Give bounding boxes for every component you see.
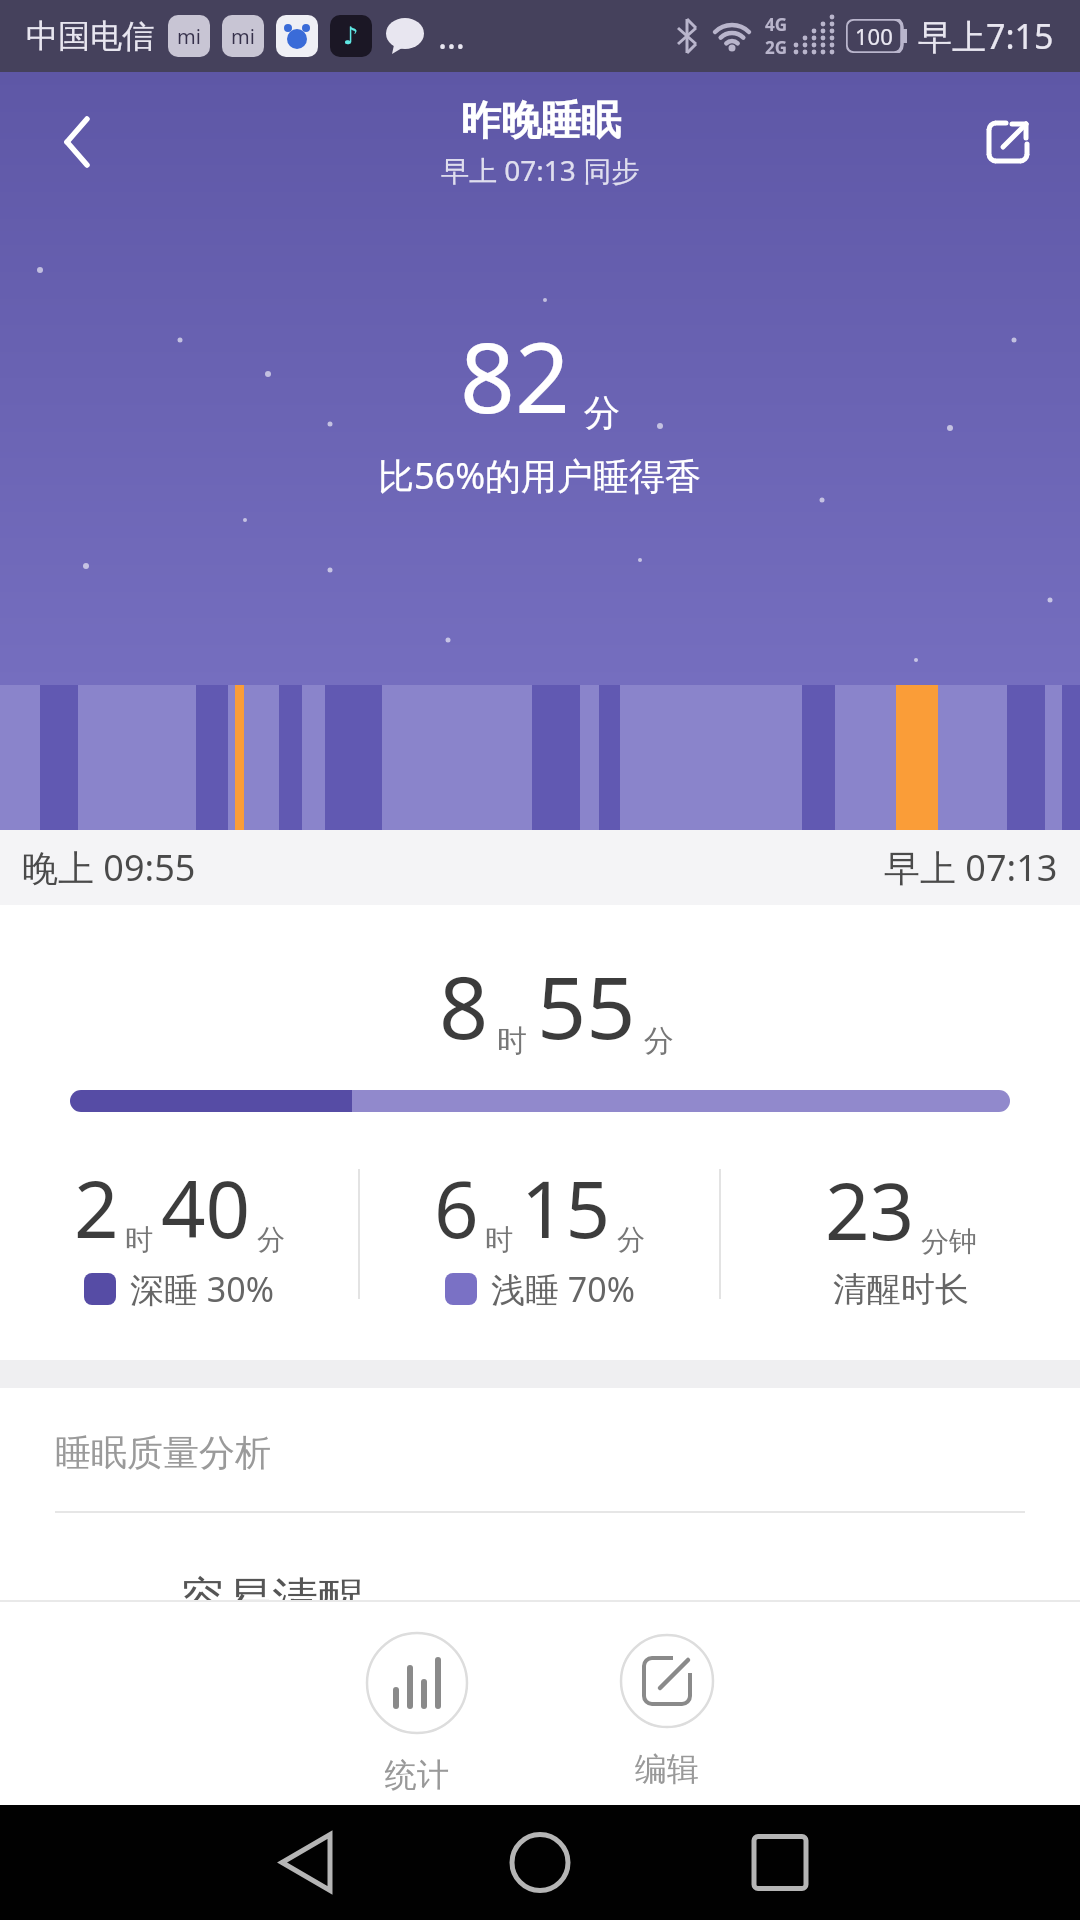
staticText: 2 bbox=[74, 1155, 119, 1261]
staticText: 15 bbox=[521, 1155, 611, 1261]
button[interactable]: 编辑 bbox=[619, 1633, 715, 1789]
staticText: 早上 07:13 同步 bbox=[441, 151, 640, 189]
staticText: 100 bbox=[855, 21, 893, 51]
staticText: 清醒时长 bbox=[833, 1268, 969, 1311]
staticText: 8 bbox=[439, 947, 489, 1064]
button[interactable] bbox=[724, 1834, 824, 1892]
staticText: 编辑 bbox=[635, 1749, 699, 1789]
staticText: 分 bbox=[584, 390, 620, 435]
staticText: 时 bbox=[497, 1022, 527, 1060]
staticText: 40 bbox=[161, 1155, 251, 1261]
button[interactable] bbox=[978, 112, 1038, 172]
staticText: 睡眠质量分析 bbox=[55, 1430, 271, 1475]
staticText: 2G bbox=[765, 36, 788, 59]
staticText: 容易清醒 bbox=[180, 1571, 364, 1600]
button[interactable]: 统计 bbox=[365, 1631, 469, 1795]
staticText: 时 bbox=[125, 1222, 153, 1257]
staticText: ♪ bbox=[343, 22, 359, 50]
staticText: 23 bbox=[825, 1157, 915, 1263]
staticText: 分钟 bbox=[921, 1224, 977, 1259]
button[interactable] bbox=[256, 1834, 356, 1892]
staticText: 分 bbox=[617, 1222, 645, 1257]
staticText: 浅睡 70% bbox=[491, 1266, 635, 1312]
staticText: 55 bbox=[537, 947, 636, 1064]
staticText: 早上 07:13 bbox=[884, 843, 1058, 892]
staticText: 统计 bbox=[385, 1755, 449, 1795]
staticText: 4G bbox=[765, 13, 788, 36]
staticText: 分 bbox=[257, 1222, 285, 1257]
button[interactable] bbox=[490, 1834, 590, 1892]
staticText: 6 bbox=[434, 1155, 479, 1261]
staticText: 昨晚睡眠 bbox=[461, 95, 621, 145]
staticText: 时 bbox=[485, 1222, 513, 1257]
staticText: 晚上 09:55 bbox=[22, 843, 196, 892]
staticText: mi bbox=[231, 23, 255, 50]
staticText: 分 bbox=[644, 1022, 674, 1060]
staticText: 深睡 30% bbox=[130, 1266, 274, 1312]
button[interactable] bbox=[48, 112, 108, 172]
staticText: 82 bbox=[460, 310, 570, 441]
staticText: 早上7:15 bbox=[918, 13, 1054, 59]
staticText: mi bbox=[177, 23, 201, 50]
staticText: 中国电信 bbox=[26, 16, 154, 56]
staticText: 比56%的用户睡得香 bbox=[378, 451, 702, 500]
staticText: … bbox=[438, 13, 465, 59]
